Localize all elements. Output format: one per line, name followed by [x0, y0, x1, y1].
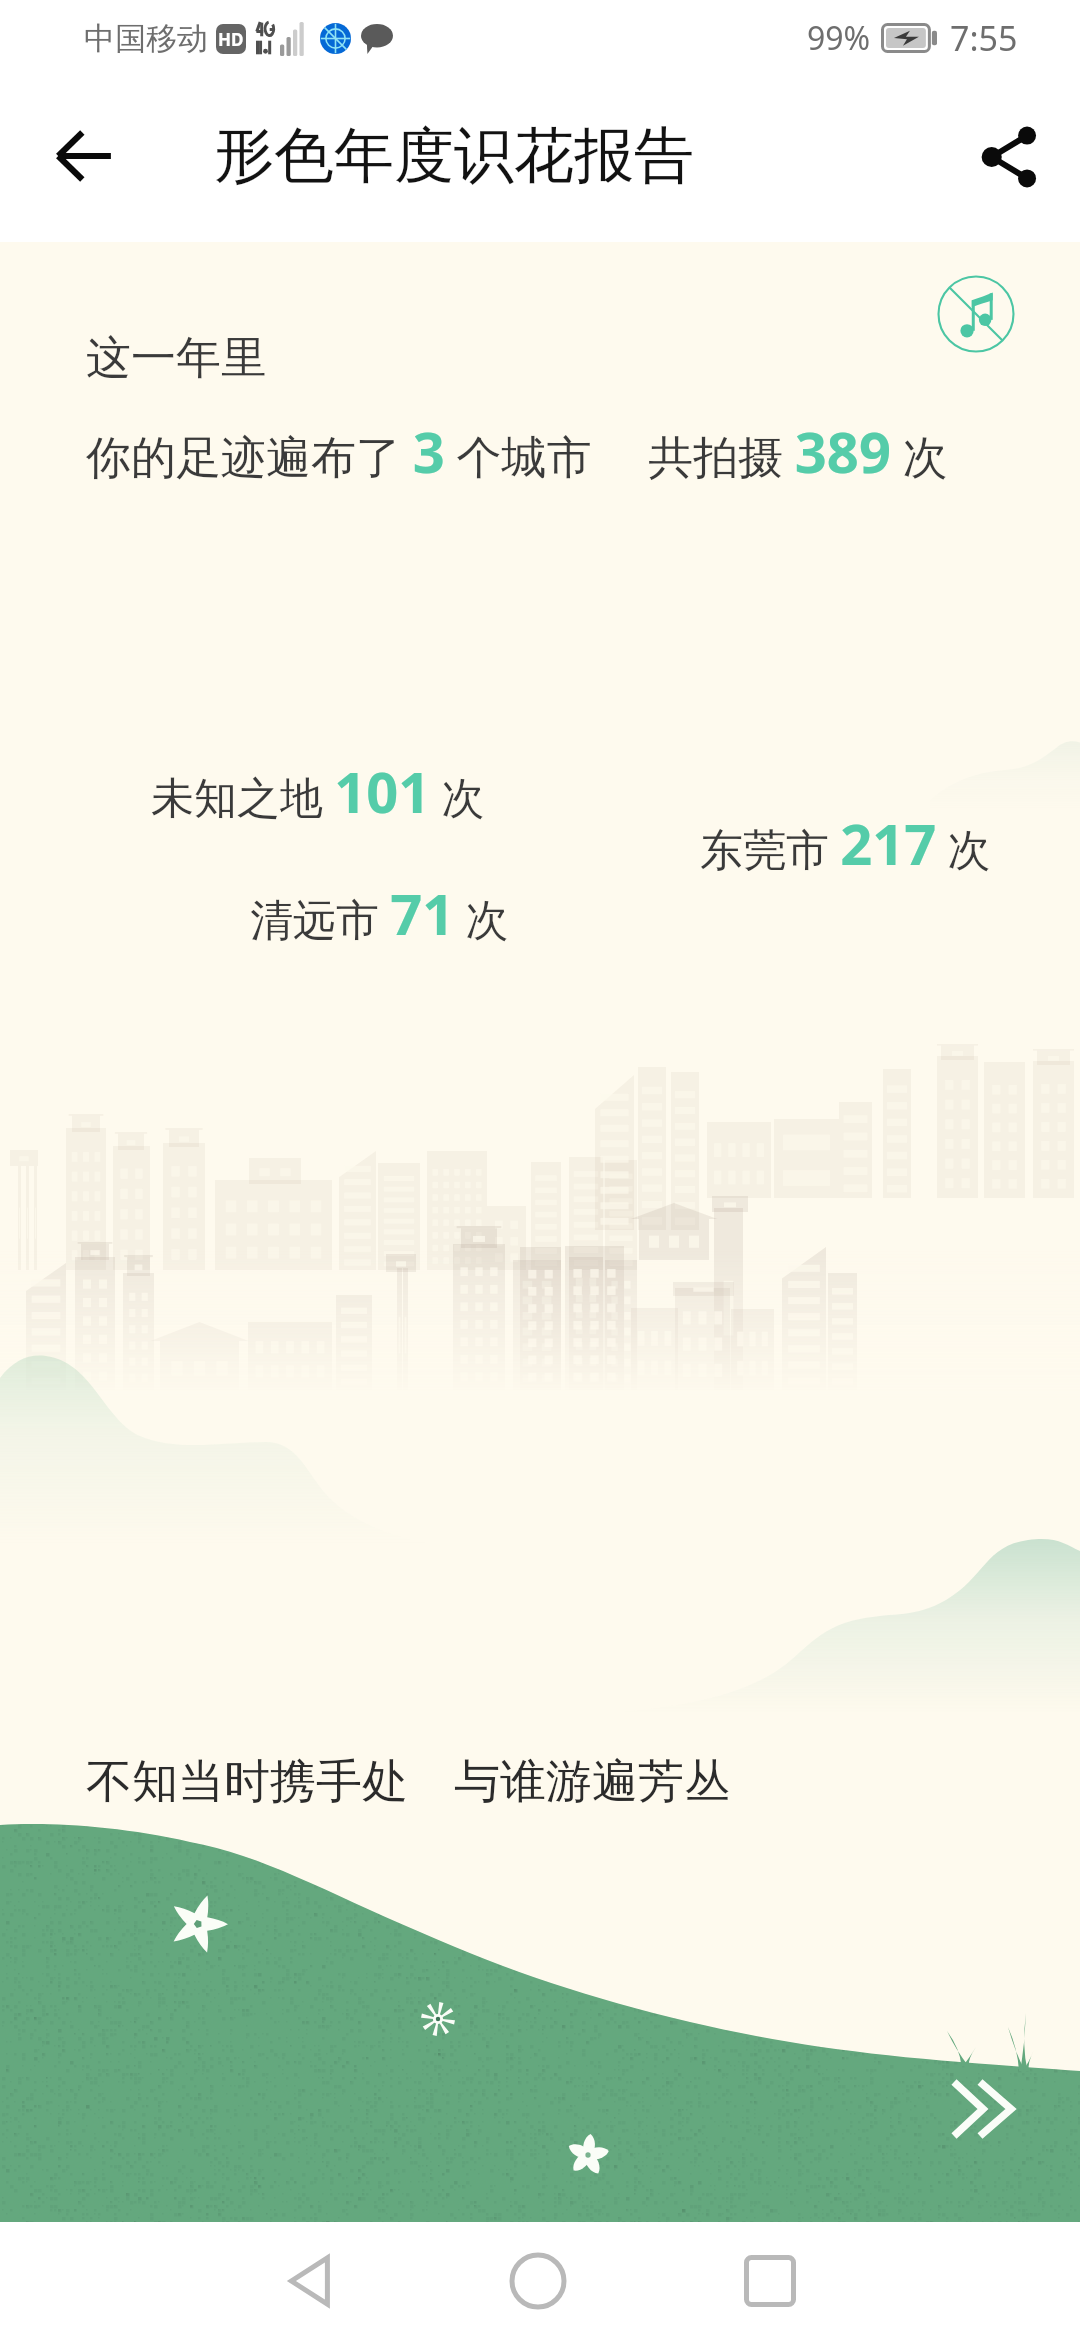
staticText: 你的足迹遍布了 3 个城市 共拍摄 389 次 [86, 413, 948, 489]
staticText: 中国移动 [84, 19, 208, 58]
staticText: 7:55 [950, 15, 1018, 61]
button[interactable]: Back [264, 2235, 356, 2327]
staticText: HD [218, 28, 244, 51]
button[interactable]: Home [492, 2235, 584, 2327]
staticText: 东莞市 217 次 [700, 805, 991, 881]
staticText: 形色年度识花报告 [214, 118, 694, 194]
button[interactable]: Recent apps [724, 2235, 816, 2327]
staticText: 未知之地 101 次 [151, 753, 485, 829]
button[interactable]: Next page [924, 2049, 1044, 2169]
button[interactable]: Music off [926, 264, 1026, 364]
staticText: 不知当时携手处 与谁游遍芳丛 [86, 1748, 730, 1811]
button[interactable]: Share [962, 109, 1058, 205]
button[interactable]: Back [36, 108, 132, 204]
staticText: 清远市 71 次 [250, 875, 509, 951]
staticText: 这一年里 [86, 330, 266, 387]
staticText: 99% [807, 16, 871, 60]
